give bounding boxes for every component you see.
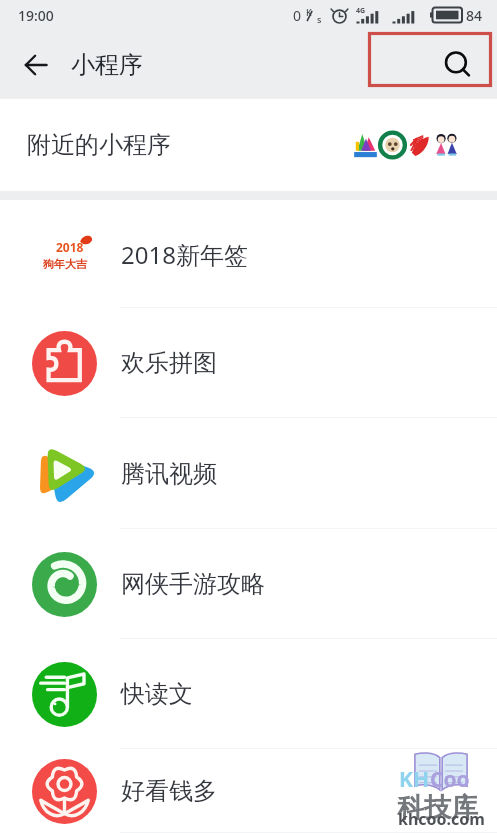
- staticText: 2018新年签: [121, 238, 248, 271]
- staticText: 欢乐拼图: [121, 348, 217, 378]
- staticText: KH: [399, 765, 430, 794]
- staticText: 好看钱多: [121, 776, 217, 806]
- button[interactable]: 好看钱多: [0, 749, 497, 833]
- staticText: 狗年大吉: [43, 257, 87, 271]
- button[interactable]: 2018: [0, 200, 497, 308]
- button[interactable]: 腾讯视频: [0, 418, 497, 529]
- button[interactable]: Back: [14, 43, 58, 87]
- staticText: 4G: [356, 6, 366, 16]
- button[interactable]: Search: [436, 43, 480, 87]
- staticText: Coo: [430, 765, 470, 794]
- button[interactable]: 附近的小程序: [0, 99, 497, 191]
- staticText: 腾讯视频: [121, 459, 217, 489]
- staticText: 快读文: [121, 679, 193, 709]
- staticText: K: [306, 6, 312, 18]
- staticText: 附近的小程序: [27, 130, 171, 160]
- staticText: 19:00: [18, 6, 54, 25]
- staticText: s: [317, 13, 322, 25]
- staticText: 2018: [56, 239, 84, 255]
- button[interactable]: 网侠手游攻略: [0, 529, 497, 639]
- staticText: 84: [466, 6, 483, 25]
- staticText: 科技库: [397, 791, 478, 825]
- staticText: 网侠手游攻略: [121, 569, 265, 599]
- staticText: 0: [293, 6, 302, 25]
- staticText: 小程序: [71, 50, 143, 80]
- button[interactable]: 欢乐拼图: [0, 308, 497, 418]
- button[interactable]: 快读文: [0, 639, 497, 749]
- staticText: khcoo.com: [398, 808, 484, 830]
